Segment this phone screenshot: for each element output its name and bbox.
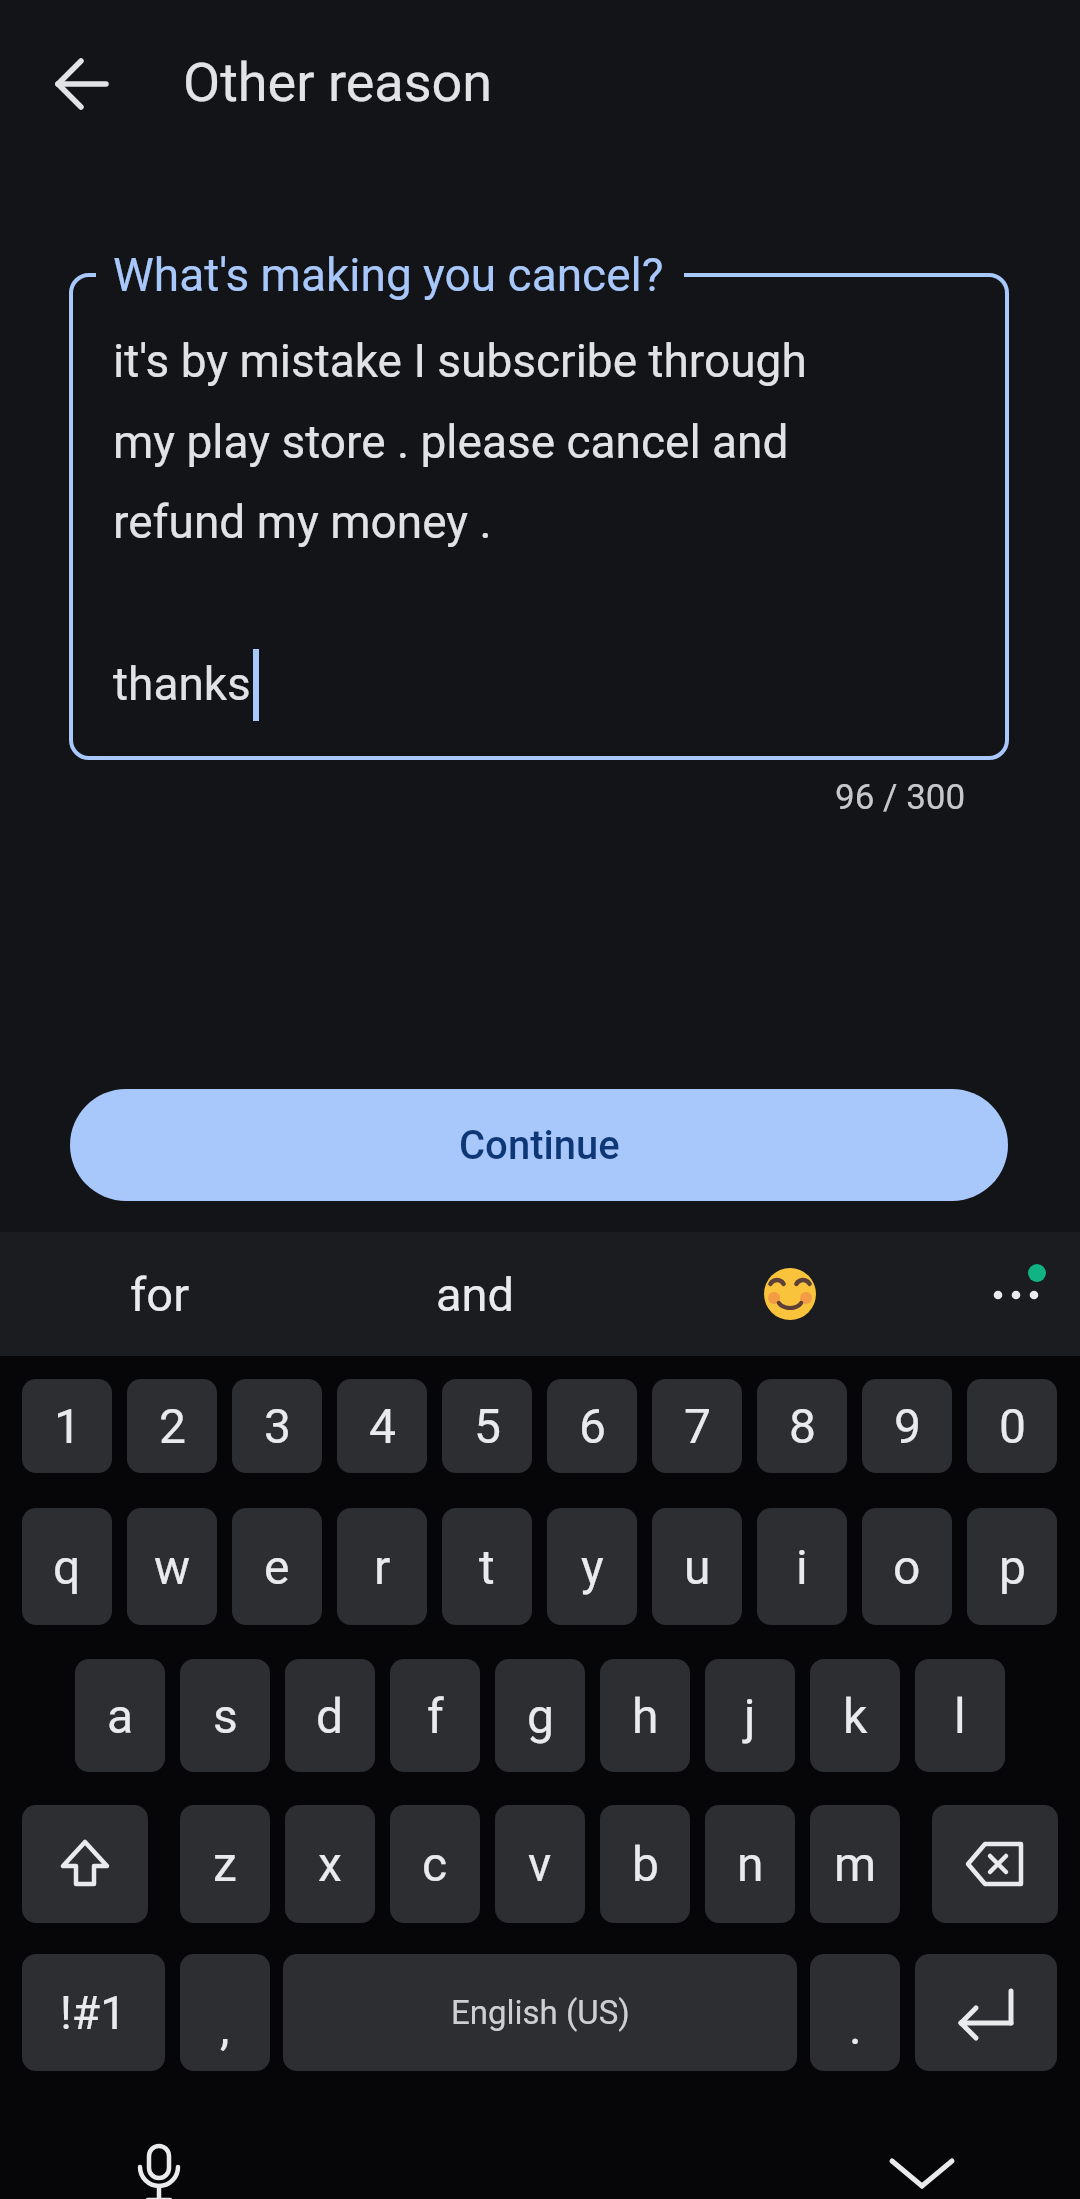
button[interactable]: g: [495, 1659, 585, 1772]
button[interactable]: 9: [862, 1379, 952, 1473]
staticText: 7: [684, 1398, 711, 1454]
button[interactable]: [872, 2132, 972, 2199]
staticText: my play store . please cancel and: [113, 415, 789, 469]
staticText: 2: [159, 1398, 186, 1454]
staticText: refund my money .: [113, 495, 492, 549]
staticText: e: [264, 1539, 290, 1595]
button[interactable]: v: [495, 1805, 585, 1923]
staticText: 96 / 300: [835, 777, 966, 818]
staticText: x: [318, 1836, 342, 1892]
staticText: What's making you cancel?: [113, 248, 664, 302]
button[interactable]: [971, 1249, 1061, 1339]
button[interactable]: .: [810, 1954, 900, 2071]
button[interactable]: m: [810, 1805, 900, 1923]
button[interactable]: n: [705, 1805, 795, 1923]
button[interactable]: Continue: [70, 1089, 1008, 1201]
button[interactable]: x: [285, 1805, 375, 1923]
staticText: z: [213, 1836, 237, 1892]
button[interactable]: for: [90, 1232, 230, 1356]
staticText: 6: [579, 1398, 606, 1454]
button[interactable]: ,: [180, 1954, 270, 2071]
button[interactable]: q: [22, 1508, 112, 1625]
staticText: English (US): [451, 1993, 630, 2032]
button[interactable]: t: [442, 1508, 532, 1625]
button[interactable]: k: [810, 1659, 900, 1772]
staticText: for: [130, 1267, 190, 1322]
staticText: n: [737, 1836, 764, 1892]
staticText: r: [374, 1539, 391, 1595]
button[interactable]: o: [862, 1508, 952, 1625]
button[interactable]: and: [405, 1232, 545, 1356]
staticText: ,: [220, 1999, 230, 2055]
staticText: c: [422, 1836, 448, 1892]
button[interactable]: h: [600, 1659, 690, 1772]
button[interactable]: d: [285, 1659, 375, 1772]
staticText: s: [213, 1688, 238, 1744]
staticText: l: [954, 1688, 966, 1744]
staticText: thanks: [113, 657, 251, 711]
button[interactable]: u: [652, 1508, 742, 1625]
button[interactable]: 4: [337, 1379, 427, 1473]
staticText: w: [154, 1539, 191, 1595]
staticText: 0: [999, 1398, 1026, 1454]
staticText: 8: [789, 1398, 816, 1454]
staticText: y: [581, 1539, 604, 1595]
staticText: a: [107, 1688, 134, 1744]
button[interactable]: y: [547, 1508, 637, 1625]
button[interactable]: j: [705, 1659, 795, 1772]
staticText: p: [999, 1539, 1026, 1595]
button[interactable]: e: [232, 1508, 322, 1625]
button[interactable]: English (US): [283, 1954, 797, 2071]
staticText: m: [834, 1836, 877, 1892]
button[interactable]: c: [390, 1805, 480, 1923]
button[interactable]: a: [75, 1659, 165, 1772]
button[interactable]: 0: [967, 1379, 1057, 1473]
button[interactable]: [114, 2129, 204, 2199]
staticText: !#1: [60, 1986, 127, 2040]
staticText: h: [632, 1688, 659, 1744]
staticText: o: [893, 1539, 921, 1595]
staticText: u: [684, 1539, 711, 1595]
staticText: d: [316, 1688, 344, 1744]
button[interactable]: 8: [757, 1379, 847, 1473]
button[interactable]: 7: [652, 1379, 742, 1473]
button[interactable]: [932, 1805, 1058, 1923]
staticText: i: [796, 1539, 808, 1595]
button[interactable]: i: [757, 1508, 847, 1625]
button[interactable]: [22, 1805, 148, 1923]
staticText: 3: [264, 1398, 291, 1454]
button[interactable]: p: [967, 1508, 1057, 1625]
button[interactable]: 3: [232, 1379, 322, 1473]
button[interactable]: [750, 1254, 830, 1334]
staticText: Continue: [459, 1122, 620, 1169]
staticText: 1: [54, 1398, 81, 1454]
staticText: it's by mistake I subscribe through: [113, 334, 807, 388]
staticText: and: [436, 1267, 515, 1322]
staticText: Other reason: [183, 51, 493, 114]
staticText: 5: [474, 1398, 501, 1454]
staticText: j: [744, 1688, 756, 1744]
button[interactable]: 5: [442, 1379, 532, 1473]
button[interactable]: 2: [127, 1379, 217, 1473]
button[interactable]: w: [127, 1508, 217, 1625]
staticText: b: [632, 1836, 659, 1892]
button[interactable]: [50, 52, 114, 116]
button[interactable]: f: [390, 1659, 480, 1772]
staticText: k: [843, 1688, 868, 1744]
button[interactable]: z: [180, 1805, 270, 1923]
staticText: 9: [894, 1398, 921, 1454]
button[interactable]: l: [915, 1659, 1005, 1772]
button[interactable]: b: [600, 1805, 690, 1923]
button[interactable]: !#1: [22, 1954, 165, 2071]
button[interactable]: s: [180, 1659, 270, 1772]
staticText: .: [849, 1999, 862, 2055]
button[interactable]: 6: [547, 1379, 637, 1473]
staticText: v: [528, 1836, 552, 1892]
staticText: q: [53, 1539, 81, 1595]
staticText: f: [427, 1688, 444, 1744]
button[interactable]: [915, 1954, 1057, 2071]
button[interactable]: r: [337, 1508, 427, 1625]
staticText: g: [527, 1688, 554, 1744]
button[interactable]: 1: [22, 1379, 112, 1473]
staticText: t: [479, 1539, 495, 1595]
